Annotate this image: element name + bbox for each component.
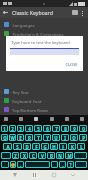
button[interactable]: 6 bbox=[43, 125, 51, 132]
staticText: 2 bbox=[11, 126, 14, 132]
staticText: U bbox=[54, 135, 58, 141]
button[interactable]: 9 bbox=[70, 125, 78, 132]
button[interactable]: V bbox=[38, 152, 46, 159]
staticText: Q bbox=[3, 135, 7, 141]
button[interactable]: J bbox=[59, 143, 67, 150]
button[interactable]: 3 bbox=[17, 125, 24, 132]
button[interactable]: Hide keyboard bbox=[11, 171, 19, 179]
staticText: P bbox=[82, 135, 85, 141]
staticText: Languages bbox=[12, 22, 35, 28]
button[interactable]: K bbox=[68, 143, 76, 150]
button[interactable] bbox=[74, 152, 87, 159]
button[interactable]: Q bbox=[1, 134, 8, 141]
staticText: 8 bbox=[64, 126, 67, 132]
button[interactable]: Keyboard tool 5 bbox=[64, 116, 70, 122]
button[interactable]: P bbox=[79, 134, 87, 141]
button[interactable]: Keyboard Font bbox=[0, 96, 88, 105]
staticText: I bbox=[64, 135, 66, 141]
button[interactable]: B bbox=[47, 152, 55, 159]
button[interactable]: CLOSE bbox=[63, 61, 80, 68]
button[interactable]: H bbox=[50, 143, 58, 150]
staticText: C bbox=[32, 153, 35, 159]
button[interactable]: Keyboard tool 1 bbox=[3, 116, 9, 122]
staticText: N bbox=[58, 153, 62, 159]
button[interactable]: F bbox=[32, 143, 40, 150]
button[interactable]: Key Size bbox=[0, 87, 88, 96]
button[interactable]: Z bbox=[12, 152, 19, 159]
button[interactable]: R bbox=[25, 134, 33, 141]
button[interactable]: L bbox=[77, 143, 85, 150]
button[interactable]: Back bbox=[30, 171, 38, 179]
button[interactable]: 1 bbox=[1, 125, 8, 132]
staticText: Classic Keyboard bbox=[12, 9, 53, 16]
staticText: 7 bbox=[55, 126, 58, 132]
button[interactable]: Keyboard tool 3 bbox=[33, 116, 39, 122]
staticText: Type here to test the keyboard bbox=[11, 40, 70, 46]
button[interactable]: M bbox=[65, 152, 73, 159]
staticText: V bbox=[41, 153, 44, 159]
button[interactable]: , bbox=[17, 161, 24, 168]
button[interactable]: X bbox=[20, 152, 28, 159]
button[interactable] bbox=[51, 161, 58, 168]
button[interactable]: Recents bbox=[69, 171, 77, 179]
button[interactable]: S bbox=[13, 143, 22, 150]
button[interactable] bbox=[1, 161, 9, 168]
button[interactable]: O bbox=[70, 134, 78, 141]
button[interactable]: G bbox=[41, 143, 49, 150]
button[interactable]: 2 bbox=[9, 125, 16, 132]
button[interactable]: W bbox=[9, 134, 16, 141]
button[interactable]: C bbox=[29, 152, 37, 159]
button[interactable] bbox=[1, 152, 11, 159]
button[interactable]: 8 bbox=[61, 125, 69, 132]
staticText: Z bbox=[14, 153, 17, 159]
staticText: B bbox=[50, 153, 53, 159]
staticText: E bbox=[19, 135, 22, 141]
button[interactable]: U bbox=[52, 134, 60, 141]
staticText: L bbox=[80, 144, 83, 150]
button[interactable]: Languages bbox=[0, 20, 88, 29]
staticText: 0 bbox=[82, 126, 85, 132]
staticText: CLOSE bbox=[65, 62, 78, 67]
staticText: J bbox=[62, 144, 64, 150]
staticText: F bbox=[35, 144, 38, 150]
staticText: M bbox=[67, 153, 72, 159]
button[interactable]: Home bbox=[50, 171, 58, 179]
button[interactable]: A bbox=[3, 143, 12, 150]
button[interactable]: Back bbox=[1, 8, 10, 17]
staticText: Key Size bbox=[12, 89, 29, 95]
button[interactable]: D bbox=[23, 143, 31, 150]
staticText: A bbox=[6, 144, 10, 150]
button[interactable]: 0 bbox=[79, 125, 87, 132]
button[interactable]: Keyboard tool 2 bbox=[18, 116, 24, 122]
button[interactable]: I bbox=[61, 134, 69, 141]
staticText: H bbox=[52, 144, 56, 150]
button[interactable] bbox=[25, 161, 50, 168]
button[interactable]: Y bbox=[43, 134, 51, 141]
staticText: S bbox=[16, 144, 19, 150]
staticText: 9 bbox=[73, 126, 76, 132]
button[interactable]: T bbox=[34, 134, 42, 141]
button[interactable]: More options bbox=[78, 9, 86, 17]
button[interactable]: Test keyboard bbox=[70, 8, 79, 17]
button[interactable]: 7 bbox=[52, 125, 60, 132]
button[interactable]: Predictions & Corrections bbox=[0, 29, 88, 38]
button[interactable]: Emoji bbox=[10, 161, 16, 168]
staticText: ? bbox=[69, 162, 72, 168]
button[interactable]: . bbox=[59, 161, 66, 168]
staticText: Top/Bottom Rows bbox=[12, 107, 48, 113]
staticText: Y bbox=[46, 135, 49, 141]
button[interactable]: Keyboard tool 4 bbox=[49, 116, 55, 122]
button[interactable]: E bbox=[17, 134, 24, 141]
staticText: K bbox=[71, 144, 74, 150]
button[interactable]: Keyboard tool 6 bbox=[79, 116, 85, 122]
button[interactable] bbox=[75, 161, 87, 168]
button[interactable]: N bbox=[56, 152, 64, 159]
button[interactable]: 5 bbox=[34, 125, 42, 132]
staticText: X bbox=[23, 153, 26, 159]
button[interactable]: 4 bbox=[25, 125, 33, 132]
staticText: Predictions & Corrections bbox=[12, 31, 64, 37]
staticText: W bbox=[10, 135, 15, 141]
button[interactable]: Top/Bottom Rows bbox=[0, 105, 88, 114]
staticText: R bbox=[28, 135, 31, 141]
button[interactable]: ? bbox=[67, 161, 74, 168]
